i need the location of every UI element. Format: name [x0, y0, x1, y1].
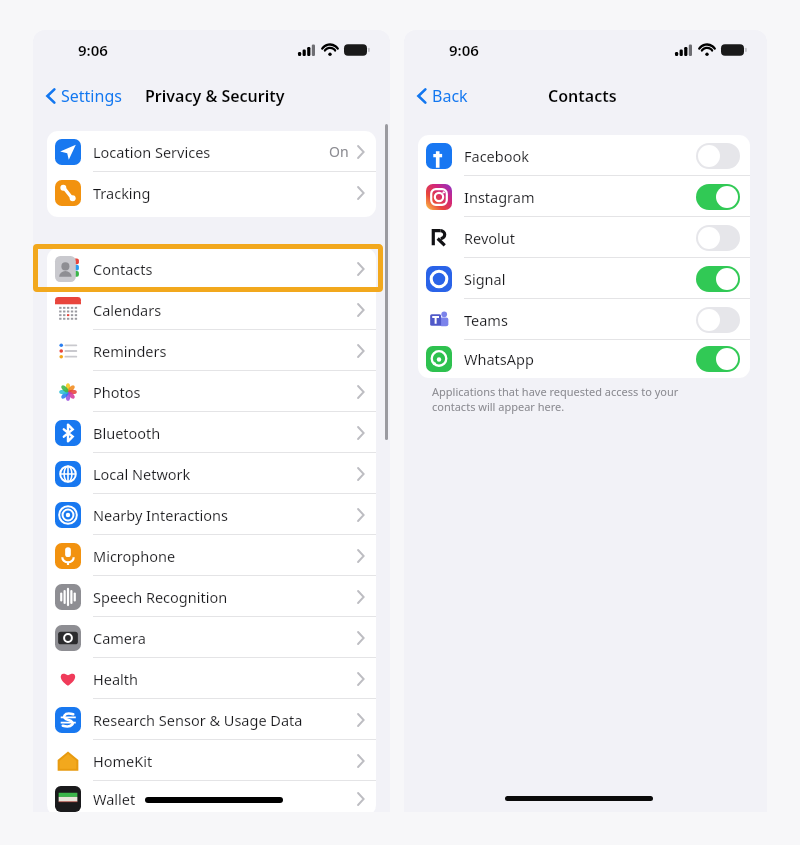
button[interactable]: Bluetooth [47, 412, 376, 453]
staticText: Contacts [93, 259, 153, 279]
button[interactable]: Tracking [47, 172, 376, 213]
button[interactable]: Microphone [47, 535, 376, 576]
button[interactable]: Research Sensor & Usage Data [47, 699, 376, 740]
staticText: Contacts [548, 85, 617, 107]
staticText: WhatsApp [464, 349, 534, 369]
button[interactable]: Calendars [47, 289, 376, 330]
button[interactable]: Wallet [47, 781, 376, 812]
button[interactable]: Camera [47, 617, 376, 658]
staticText: Back [432, 85, 468, 107]
button[interactable]: Instagram on [696, 184, 740, 210]
button[interactable]: Instagram [418, 176, 750, 217]
staticText: Wallet [93, 789, 136, 809]
button[interactable]: Local Network [47, 453, 376, 494]
button[interactable]: Nearby Interactions [47, 494, 376, 535]
staticText: Speech Recognition [93, 587, 228, 607]
button[interactable]: Location Services [47, 131, 376, 172]
staticText: Settings [61, 85, 122, 107]
staticText: Research Sensor & Usage Data [93, 710, 303, 730]
button[interactable]: Photos [47, 371, 376, 412]
staticText: Privacy & Security [145, 85, 285, 107]
button[interactable]: Settings [41, 81, 126, 111]
button[interactable]: Reminders [47, 330, 376, 371]
staticText: Revolut [464, 228, 515, 248]
staticText: Facebook [464, 146, 530, 166]
staticText: Reminders [93, 341, 167, 361]
staticText: Microphone [93, 546, 176, 566]
button[interactable]: Contacts [47, 248, 376, 289]
button[interactable]: Teams off [696, 307, 740, 333]
button[interactable]: Signal on [696, 266, 740, 292]
button[interactable]: Health [47, 658, 376, 699]
staticText: Bluetooth [93, 423, 161, 443]
staticText: Nearby Interactions [93, 505, 228, 525]
button[interactable]: Revolut [418, 217, 750, 258]
staticText: Local Network [93, 464, 191, 484]
button[interactable]: WhatsApp [418, 340, 750, 378]
staticText: Tracking [93, 183, 151, 203]
staticText: Camera [93, 628, 146, 648]
staticText: Location Services [93, 142, 211, 162]
staticText: Teams [464, 310, 508, 330]
staticText: Applications that have requested access … [432, 384, 679, 414]
staticText: 9:06 [78, 40, 108, 60]
staticText: Calendars [93, 300, 162, 320]
button[interactable]: Back [412, 81, 472, 111]
staticText: Health [93, 669, 138, 689]
button[interactable]: Signal [418, 258, 750, 299]
staticText: Photos [93, 382, 141, 402]
button[interactable]: Facebook [418, 135, 750, 176]
staticText: 9:06 [449, 40, 479, 60]
button[interactable]: Revolut off [696, 225, 740, 251]
button[interactable]: HomeKit [47, 740, 376, 781]
staticText: Signal [464, 269, 506, 289]
staticText: On [329, 142, 349, 161]
staticText: HomeKit [93, 751, 153, 771]
button[interactable]: WhatsApp on [696, 346, 740, 372]
button[interactable]: Teams [418, 299, 750, 340]
button[interactable]: Facebook off [696, 143, 740, 169]
staticText: Instagram [464, 187, 535, 207]
button[interactable]: Speech Recognition [47, 576, 376, 617]
